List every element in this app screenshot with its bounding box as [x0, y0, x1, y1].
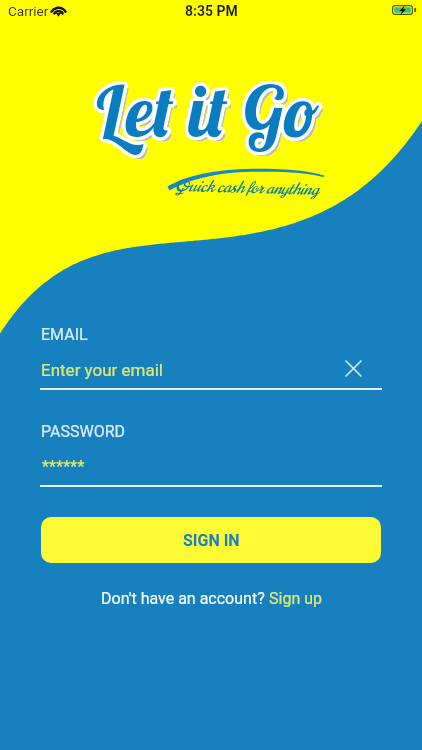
staticText: PASSWORD — [41, 422, 126, 441]
staticText: Let it Go — [93, 66, 318, 155]
button[interactable]: Don't have an account? — [97, 584, 326, 613]
staticText: Let it Go — [93, 63, 318, 152]
staticText: Let it Go — [90, 66, 315, 155]
staticText: Don't have an account? — [101, 589, 269, 608]
staticText: Let it Go — [91, 68, 316, 157]
staticText: Let it Go — [96, 66, 321, 155]
staticText: Let it Go — [91, 64, 316, 153]
staticText: Let it Go — [92, 69, 317, 158]
staticText: Let it Go — [94, 63, 319, 152]
button[interactable]: Enter your email — [40, 352, 382, 388]
staticText: Let it Go — [90, 65, 315, 154]
staticText: Let it Go — [93, 69, 318, 158]
staticText: ****** — [42, 457, 85, 476]
staticText: Sign up — [269, 589, 322, 608]
staticText: Quick cash for anything — [175, 174, 319, 202]
staticText: Let it Go — [94, 69, 319, 158]
staticText: Enter your email — [41, 360, 164, 380]
staticText: Carrier — [8, 3, 49, 19]
button[interactable]: SIGN IN — [41, 517, 381, 563]
staticText: Let it Go — [95, 68, 320, 157]
staticText: Let it Go — [97, 70, 322, 159]
staticText: SIGN IN — [183, 531, 240, 550]
staticText: Let it Go — [96, 65, 321, 154]
staticText: Let it Go — [96, 67, 321, 156]
staticText: Let it Go — [92, 63, 317, 152]
staticText: 8:35 PM — [185, 3, 238, 19]
staticText: Let it Go — [90, 67, 315, 156]
staticText: EMAIL — [41, 325, 88, 344]
staticText: Let it Go — [95, 64, 320, 153]
button[interactable]: Clear email — [346, 361, 361, 376]
button[interactable]: ****** — [40, 448, 382, 484]
